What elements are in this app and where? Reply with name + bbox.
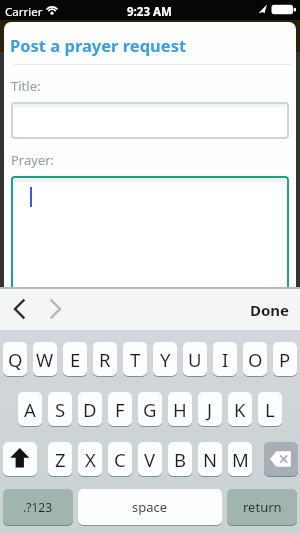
staticText: N <box>203 447 218 472</box>
button[interactable]: S <box>48 392 72 426</box>
staticText: I <box>222 347 229 372</box>
staticText: L <box>265 397 275 422</box>
staticText: F <box>115 397 125 422</box>
staticText: Carrier <box>5 4 43 20</box>
button[interactable]: return <box>227 489 297 525</box>
button[interactable]: P <box>273 342 297 376</box>
staticText: K <box>234 397 246 422</box>
staticText: S <box>55 397 66 422</box>
button[interactable]: T <box>123 342 147 376</box>
button[interactable]: R <box>93 342 117 376</box>
button[interactable] <box>11 176 289 290</box>
button[interactable] <box>8 295 32 323</box>
button[interactable]: O <box>243 342 267 376</box>
staticText: G <box>143 397 157 422</box>
staticText: H <box>173 397 187 422</box>
staticText: Q <box>8 347 23 372</box>
staticText: B <box>174 447 187 472</box>
button[interactable]: E <box>63 342 87 376</box>
staticText: Post a prayer request <box>10 34 187 56</box>
staticText: W <box>36 347 54 372</box>
staticText: T <box>130 347 141 372</box>
staticText: M <box>232 447 249 472</box>
button[interactable]: M <box>228 442 252 476</box>
button[interactable]: H <box>168 392 192 426</box>
staticText: space <box>132 498 168 516</box>
staticText: Done <box>250 300 290 320</box>
button[interactable] <box>264 442 298 476</box>
staticText: Prayer: <box>11 151 55 169</box>
button[interactable]: W <box>33 342 57 376</box>
button[interactable]: Z <box>48 442 72 476</box>
button[interactable] <box>11 102 289 139</box>
button[interactable]: X <box>78 442 102 476</box>
staticText: P <box>279 347 291 372</box>
button[interactable]: C <box>108 442 132 476</box>
button[interactable] <box>3 442 37 476</box>
button[interactable]: space <box>78 489 222 525</box>
button[interactable]: V <box>138 442 162 476</box>
button[interactable]: I <box>213 342 237 376</box>
staticText: O <box>248 347 263 372</box>
button[interactable]: L <box>258 392 282 426</box>
button[interactable]: D <box>78 392 102 426</box>
button[interactable]: F <box>108 392 132 426</box>
staticText: J <box>207 397 213 422</box>
button[interactable]: Y <box>153 342 177 376</box>
button[interactable]: Q <box>3 342 27 376</box>
button[interactable]: K <box>228 392 252 426</box>
staticText: R <box>99 347 111 372</box>
button[interactable]: A <box>18 392 42 426</box>
staticText: return <box>243 498 282 516</box>
staticText: .?123 <box>23 499 53 515</box>
button[interactable]: Done <box>245 296 295 324</box>
staticText: V <box>144 447 156 472</box>
staticText: Y <box>160 347 171 372</box>
staticText: C <box>114 447 126 472</box>
button[interactable]: U <box>183 342 207 376</box>
button[interactable]: B <box>168 442 192 476</box>
staticText: Z <box>55 447 66 472</box>
staticText: 9:23 AM <box>127 4 172 20</box>
button[interactable]: J <box>198 392 222 426</box>
button[interactable] <box>44 295 68 323</box>
button[interactable]: .?123 <box>3 489 73 525</box>
staticText: E <box>70 347 81 372</box>
button[interactable]: G <box>138 392 162 426</box>
staticText: D <box>83 397 97 422</box>
button[interactable]: N <box>198 442 222 476</box>
staticText: Title: <box>11 77 41 95</box>
staticText: A <box>24 397 36 422</box>
staticText: U <box>188 347 202 372</box>
staticText: X <box>85 447 96 472</box>
